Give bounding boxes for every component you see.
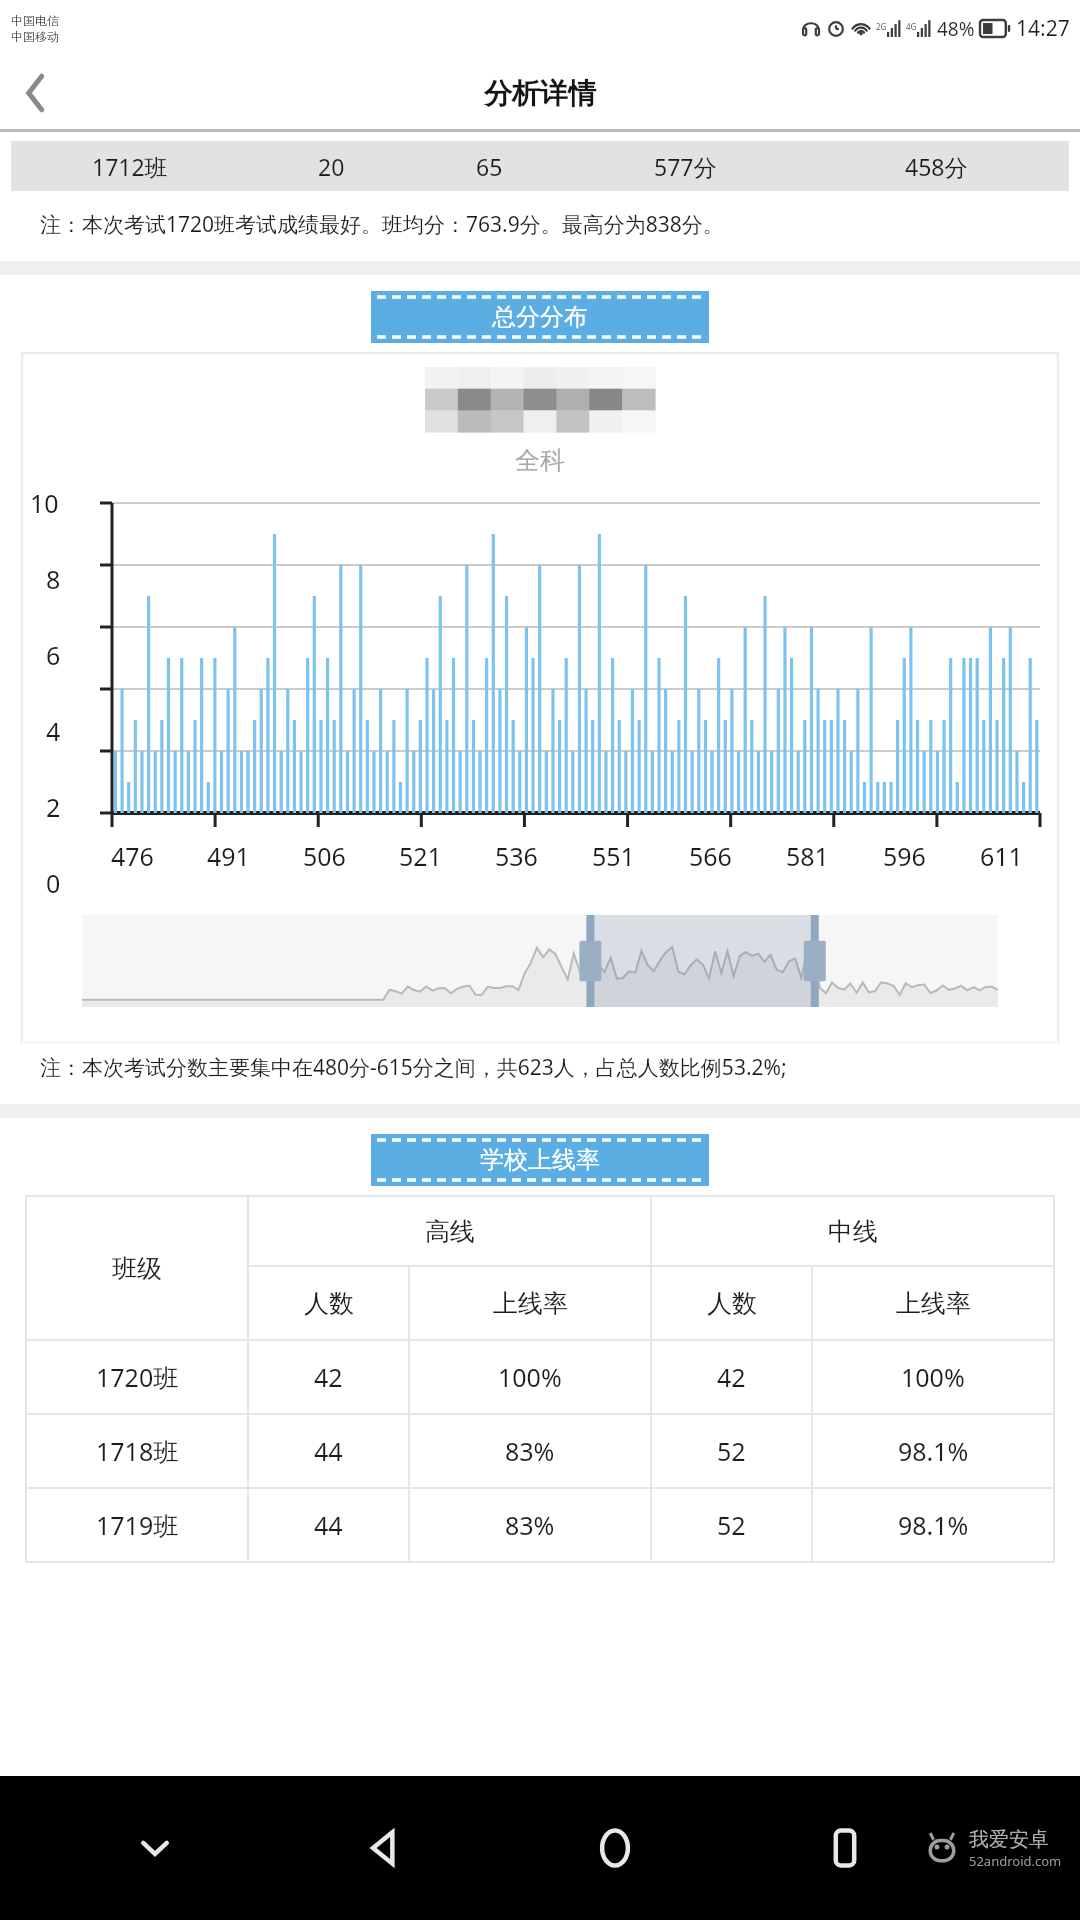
staticText: 536	[495, 839, 538, 873]
staticText: 注：本次考试1720班考试成绩最好。班均分：763.9分。最高分为838分。	[40, 210, 724, 239]
staticText: 44	[314, 1434, 343, 1468]
staticText: 83%	[505, 1508, 555, 1542]
staticText: 551	[592, 839, 635, 873]
staticText: 52	[717, 1508, 746, 1542]
button[interactable]: Back	[0, 57, 72, 129]
staticText: 学校上线率	[480, 1145, 600, 1175]
button[interactable]: 1718班	[26, 1414, 1054, 1488]
staticText: 100%	[498, 1360, 562, 1394]
staticText: 中国移动	[11, 29, 59, 44]
staticText: 491	[207, 839, 250, 873]
staticText: 48%	[937, 16, 975, 42]
staticText: 521	[399, 839, 442, 873]
staticText: 52android.com	[969, 1852, 1062, 1870]
staticText: 高线	[425, 1216, 475, 1247]
staticText: 4G	[906, 21, 917, 32]
staticText: 4	[46, 714, 61, 748]
staticText: 总分分布	[492, 302, 588, 332]
staticText: 20	[318, 151, 345, 182]
staticText: 1719班	[96, 1508, 179, 1542]
button[interactable]: 1719班	[26, 1488, 1054, 1562]
button[interactable]: Back	[270, 1776, 500, 1920]
staticText: 98.1%	[898, 1508, 969, 1542]
button[interactable]: Recent apps	[730, 1776, 960, 1920]
staticText: 1718班	[96, 1434, 179, 1468]
button[interactable]: Hide keyboard	[40, 1776, 270, 1920]
staticText: 2	[46, 790, 61, 824]
staticText: 注：本次考试分数主要集中在480分-615分之间，共623人，占总人数比例53.…	[40, 1053, 787, 1082]
staticText: 476	[111, 839, 154, 873]
staticText: 581	[786, 839, 829, 873]
staticText: 中线	[828, 1216, 878, 1247]
staticText: 上线率	[493, 1288, 568, 1319]
staticText: 0	[46, 866, 61, 900]
button[interactable]: 1712班	[11, 141, 1069, 191]
staticText: 458分	[905, 151, 968, 182]
button[interactable]: 学校上线率	[371, 1134, 709, 1186]
staticText: 566	[689, 839, 732, 873]
staticText: 班级	[112, 1253, 162, 1284]
staticText: 人数	[707, 1288, 757, 1319]
staticText: 全科	[515, 445, 565, 476]
button[interactable]	[82, 915, 998, 1007]
staticText: 42	[717, 1360, 746, 1394]
staticText: 1720班	[96, 1360, 179, 1394]
staticText: 98.1%	[898, 1434, 969, 1468]
staticText: 人数	[304, 1288, 354, 1319]
staticText: 14:27	[1016, 14, 1070, 43]
staticText: 83%	[505, 1434, 555, 1468]
staticText: 596	[883, 839, 926, 873]
staticText: 65	[476, 151, 503, 182]
button[interactable]: 总分分布	[371, 291, 709, 343]
button[interactable]: 1720班	[26, 1340, 1054, 1414]
staticText: 2G	[876, 21, 887, 32]
staticText: 1712班	[92, 151, 168, 182]
staticText: 100%	[901, 1360, 965, 1394]
staticText: 611	[980, 839, 1023, 873]
staticText: 6	[46, 638, 61, 672]
staticText: 中国电信	[11, 13, 59, 28]
staticText: 44	[314, 1508, 343, 1542]
staticText: 分析详情	[484, 76, 596, 111]
button[interactable]: Home	[500, 1776, 730, 1920]
staticText: 我爱安卓	[969, 1827, 1049, 1852]
staticText: 上线率	[896, 1288, 971, 1319]
staticText: 506	[303, 839, 346, 873]
staticText: 10	[30, 486, 59, 520]
staticText: 42	[314, 1360, 343, 1394]
staticText: 8	[46, 562, 61, 596]
staticText: 52	[717, 1434, 746, 1468]
staticText: 577分	[654, 151, 717, 182]
